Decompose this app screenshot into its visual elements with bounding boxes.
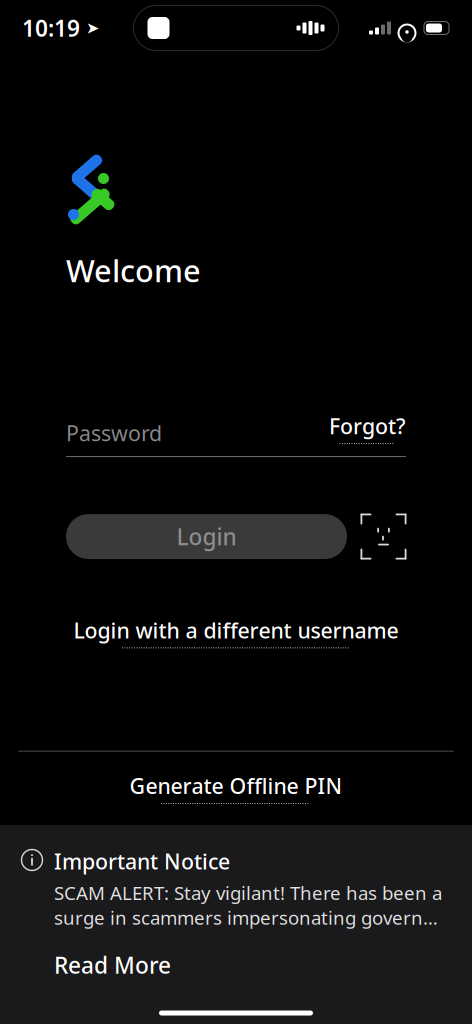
staticText: Forgot? — [329, 412, 406, 440]
staticText: Login with a different username — [73, 616, 398, 644]
button[interactable]: Login with a different username — [73, 613, 398, 651]
button[interactable]: Forgot? — [329, 409, 406, 447]
staticText: 10:19 — [22, 13, 80, 43]
button[interactable]: Generate Offline PIN — [129, 769, 342, 807]
staticText: Login — [176, 521, 236, 552]
staticText: ➤ — [80, 19, 99, 37]
staticText: Welcome — [66, 250, 201, 291]
staticText: Read More — [54, 950, 171, 980]
button[interactable]: Log in with Face ID — [361, 514, 406, 559]
staticText: Generate Offline PIN — [129, 772, 342, 800]
button[interactable]: Important Notice — [0, 825, 472, 1002]
staticText: Password — [66, 419, 162, 447]
staticText: Important Notice — [54, 847, 230, 875]
button[interactable]: Login — [66, 514, 347, 559]
staticText: SCAM ALERT: Stay vigilant! There has bee… — [54, 880, 452, 930]
